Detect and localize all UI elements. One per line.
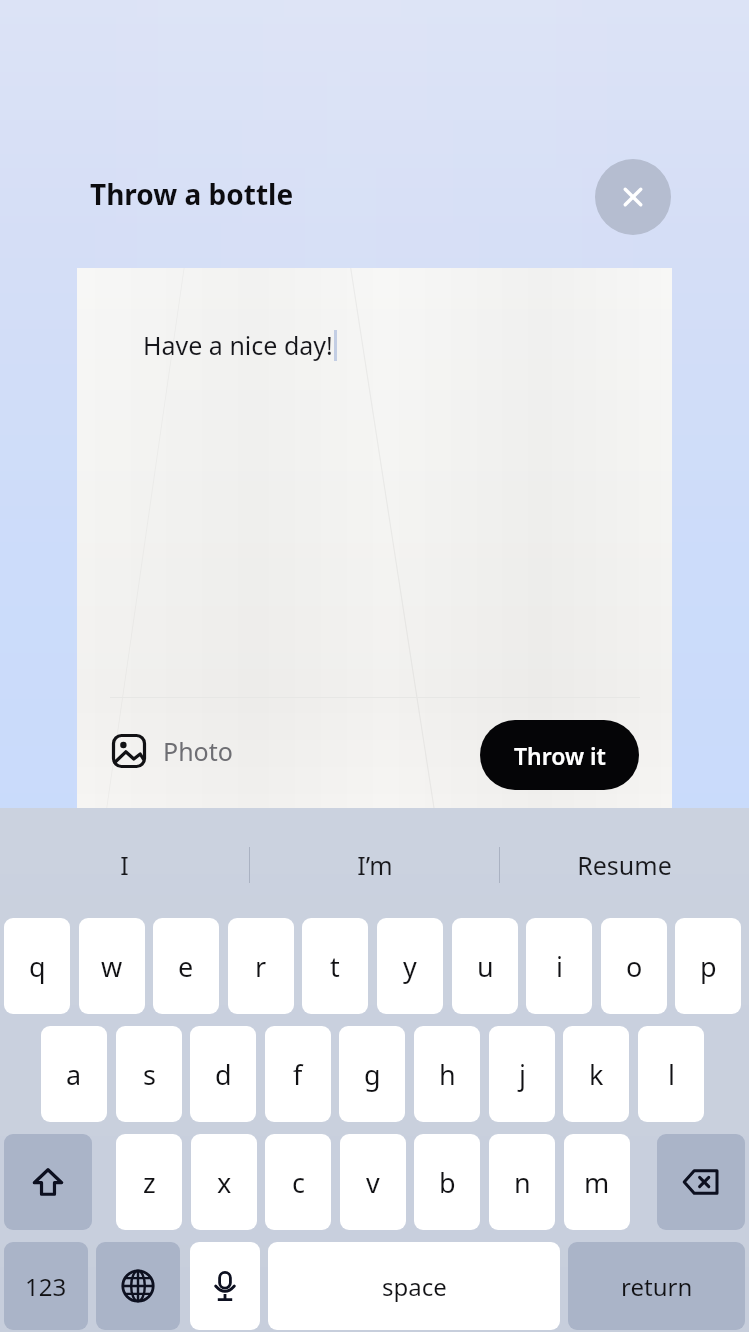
- button[interactable]: Shift: [4, 1134, 92, 1230]
- button[interactable]: o: [601, 918, 667, 1014]
- staticText: v: [366, 1164, 380, 1201]
- button[interactable]: g: [339, 1026, 405, 1122]
- staticText: l: [668, 1056, 675, 1093]
- button[interactable]: I: [0, 830, 249, 900]
- staticText: y: [403, 948, 417, 985]
- staticText: g: [364, 1056, 381, 1093]
- button[interactable]: Backspace: [657, 1134, 745, 1230]
- button[interactable]: r: [228, 918, 294, 1014]
- button[interactable]: n: [489, 1134, 555, 1230]
- button[interactable]: Dictate: [190, 1242, 260, 1330]
- button[interactable]: return: [568, 1242, 745, 1330]
- button[interactable]: w: [79, 918, 145, 1014]
- button[interactable]: k: [563, 1026, 629, 1122]
- button[interactable]: v: [340, 1134, 406, 1230]
- button[interactable]: h: [414, 1026, 480, 1122]
- staticText: i: [556, 948, 563, 985]
- staticText: I’m: [357, 848, 393, 882]
- staticText: e: [178, 948, 194, 985]
- staticText: z: [143, 1164, 156, 1201]
- staticText: b: [439, 1164, 456, 1201]
- button[interactable]: e: [153, 918, 219, 1014]
- button[interactable]: d: [190, 1026, 256, 1122]
- staticText: s: [143, 1056, 156, 1093]
- staticText: w: [101, 948, 123, 985]
- button[interactable]: x: [191, 1134, 257, 1230]
- button[interactable]: j: [489, 1026, 555, 1122]
- staticText: I: [120, 848, 129, 882]
- staticText: o: [626, 948, 643, 985]
- button[interactable]: y: [377, 918, 443, 1014]
- button[interactable]: z: [116, 1134, 182, 1230]
- staticText: t: [330, 948, 340, 985]
- staticText: Throw it: [514, 740, 606, 771]
- button[interactable]: Throw it: [480, 720, 639, 790]
- staticText: space: [382, 1270, 447, 1303]
- staticText: Have a nice day!: [143, 328, 333, 362]
- staticText: p: [700, 948, 717, 985]
- button[interactable]: i: [526, 918, 592, 1014]
- staticText: x: [217, 1164, 232, 1201]
- button[interactable]: s: [116, 1026, 182, 1122]
- staticText: Throw a bottle: [90, 175, 294, 213]
- button[interactable]: Switch keyboard: [96, 1242, 180, 1330]
- button[interactable]: u: [452, 918, 518, 1014]
- button[interactable]: p: [675, 918, 741, 1014]
- staticText: return: [621, 1270, 693, 1303]
- button[interactable]: 123: [4, 1242, 88, 1330]
- button[interactable]: l: [638, 1026, 704, 1122]
- button[interactable]: Close: [595, 159, 671, 235]
- button[interactable]: Photo: [103, 723, 239, 779]
- staticText: a: [66, 1056, 82, 1093]
- staticText: d: [215, 1056, 232, 1093]
- button[interactable]: c: [265, 1134, 331, 1230]
- button[interactable]: I’m: [250, 830, 499, 900]
- button[interactable]: m: [564, 1134, 630, 1230]
- button[interactable]: q: [4, 918, 70, 1014]
- staticText: Resume: [577, 848, 672, 882]
- staticText: h: [439, 1056, 456, 1093]
- staticText: f: [293, 1056, 303, 1093]
- button[interactable]: a: [41, 1026, 107, 1122]
- staticText: n: [514, 1164, 531, 1201]
- button[interactable]: space: [268, 1242, 560, 1330]
- button[interactable]: f: [265, 1026, 331, 1122]
- staticText: u: [477, 948, 494, 985]
- staticText: 123: [25, 1270, 67, 1303]
- button[interactable]: Resume: [500, 830, 749, 900]
- staticText: c: [292, 1164, 305, 1201]
- staticText: k: [589, 1056, 604, 1093]
- staticText: Photo: [163, 734, 233, 768]
- button[interactable]: t: [302, 918, 368, 1014]
- staticText: q: [29, 948, 46, 985]
- staticText: m: [584, 1164, 610, 1201]
- button[interactable]: b: [414, 1134, 480, 1230]
- staticText: r: [255, 948, 267, 985]
- staticText: j: [519, 1056, 526, 1093]
